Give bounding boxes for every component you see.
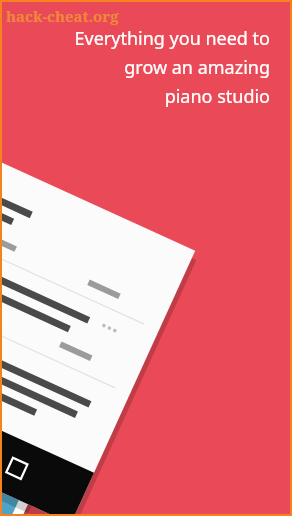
button[interactable]: Everything you need to grow an amazing p… bbox=[40, 26, 270, 108]
staticText: hack-cheat.org bbox=[6, 6, 119, 26]
